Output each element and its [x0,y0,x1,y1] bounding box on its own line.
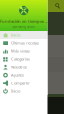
button[interactable]: Últimas recetas [0,39,47,47]
button[interactable]: Más vistas [0,47,47,55]
button[interactable]: Inicio [0,87,47,95]
button[interactable]: Ajustes [0,71,47,79]
button[interactable]: Nosotros [0,63,47,71]
staticText: Categorías [11,56,30,62]
button[interactable]: Search [52,0,64,12]
staticText: Nosotros [11,64,27,70]
staticText: Últimas recetas [11,40,39,46]
button[interactable]: Categorías [0,55,47,63]
staticText: Inicio [11,32,20,38]
staticText: Operating Sector [12,25,35,28]
staticText: Ajustes [11,72,24,78]
button[interactable]: Compartir [0,79,47,87]
staticText: Más vistas [11,48,30,54]
staticText: Fundación en tiempos de Cuarentena [0,18,47,24]
staticText: Inicio [11,88,20,94]
button[interactable]: Inicio [0,31,47,39]
staticText: Compartir [11,80,30,86]
